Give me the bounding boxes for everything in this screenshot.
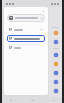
button[interactable]: Back <box>8 98 13 103</box>
button[interactable]: App shortcut 1 <box>53 30 59 36</box>
button[interactable]: Recent apps <box>51 98 56 103</box>
button[interactable]: App shortcut 5 <box>53 61 59 67</box>
button[interactable]: App shortcut 8 <box>53 88 59 94</box>
button[interactable]: Home <box>30 98 35 103</box>
button[interactable]: App shortcut 7 <box>53 79 59 85</box>
button[interactable]: App shortcut 6 <box>53 70 59 76</box>
button[interactable]: App shortcut 4 <box>53 52 59 58</box>
button[interactable]: More options <box>42 10 45 13</box>
button[interactable]: App shortcut 2 <box>53 39 59 45</box>
button[interactable] <box>7 26 45 33</box>
button[interactable] <box>7 35 45 42</box>
button[interactable] <box>7 14 45 22</box>
button[interactable] <box>7 44 45 51</box>
